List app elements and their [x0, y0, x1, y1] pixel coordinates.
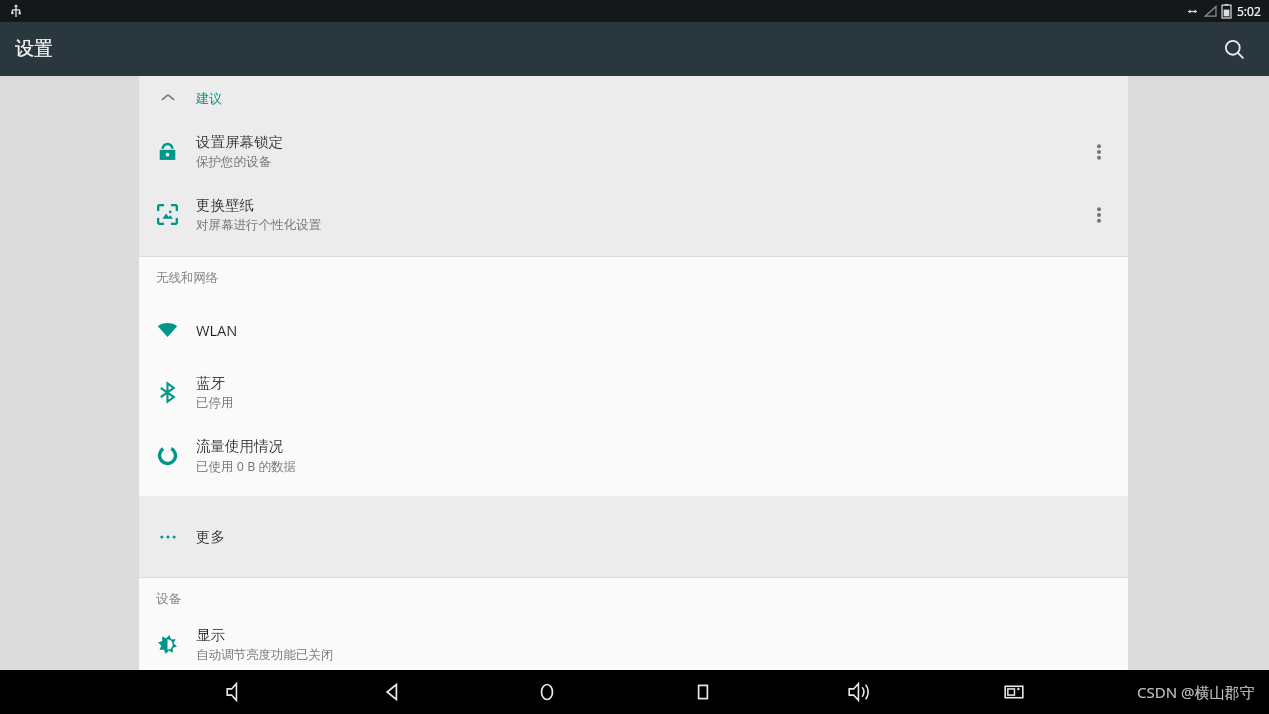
staticText: 无线和网络: [156, 270, 219, 286]
staticText: 流量使用情况: [196, 437, 283, 455]
button[interactable]: More options: [1078, 120, 1120, 183]
button[interactable]: More options: [1078, 183, 1120, 246]
button[interactable]: Volume down: [210, 670, 262, 714]
button[interactable]: WLAN: [139, 298, 1128, 361]
staticText: 自动调节亮度功能已关闭: [196, 647, 334, 663]
button[interactable]: Search: [1213, 28, 1255, 70]
staticText: 已停用: [196, 395, 234, 411]
button[interactable]: Recents: [677, 670, 729, 714]
button[interactable]: Screenshot: [988, 670, 1040, 714]
staticText: WLAN: [196, 320, 238, 340]
button[interactable]: Home: [521, 670, 573, 714]
button[interactable]: 显示: [139, 619, 1128, 670]
staticText: 蓝牙: [196, 374, 225, 392]
button[interactable]: Back: [366, 670, 418, 714]
staticText: 建议: [196, 90, 222, 106]
staticText: 对屏幕进行个性化设置: [196, 217, 321, 233]
button[interactable]: Volume up: [832, 670, 884, 714]
staticText: 保护您的设备: [196, 154, 271, 170]
staticText: 更多: [196, 528, 225, 546]
button[interactable]: 设置屏幕锁定: [139, 120, 1128, 183]
staticText: 设置屏幕锁定: [196, 133, 283, 151]
staticText: CSDN @横山郡守: [1137, 682, 1255, 702]
staticText: 设置: [15, 37, 53, 61]
staticText: 已使用 0 B 的数据: [196, 458, 297, 475]
staticText: 显示: [196, 626, 225, 644]
button[interactable]: 蓝牙: [139, 361, 1128, 424]
staticText: 设备: [156, 591, 181, 607]
staticText: 更换壁纸: [196, 196, 254, 214]
button[interactable]: 更多: [139, 505, 1128, 568]
staticText: 5:02: [1237, 3, 1261, 19]
button[interactable]: 更换壁纸: [139, 183, 1128, 246]
button[interactable]: 流量使用情况: [139, 424, 1128, 487]
button[interactable]: 建议: [139, 76, 1128, 120]
